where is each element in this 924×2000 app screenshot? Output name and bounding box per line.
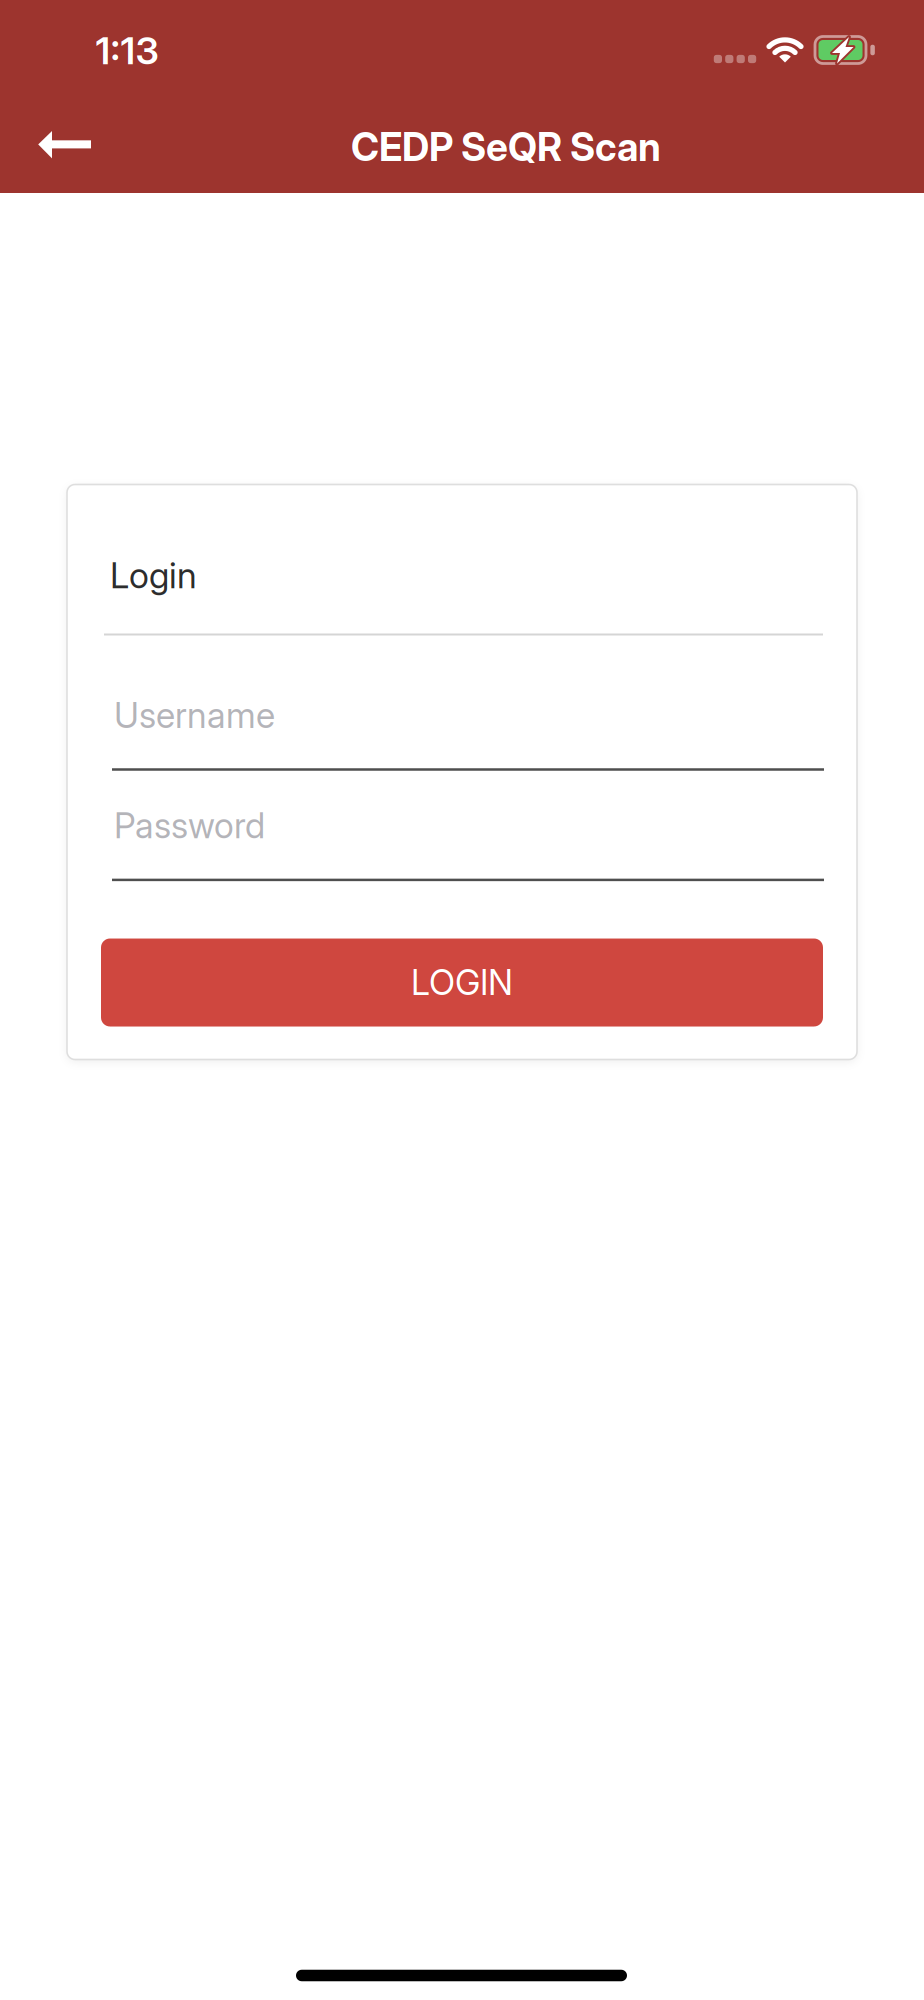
staticText: CEDP SeQR Scan [351,124,661,170]
button[interactable]: Password [112,805,824,881]
staticText: Login [110,554,197,597]
staticText: Username [114,694,275,736]
staticText: 1:13 [95,28,158,73]
staticText: LOGIN [411,962,513,1003]
button[interactable]: LOGIN [101,938,823,1026]
button[interactable]: Back [29,119,99,169]
staticText: Password [114,805,265,847]
button[interactable]: Username [112,694,824,771]
